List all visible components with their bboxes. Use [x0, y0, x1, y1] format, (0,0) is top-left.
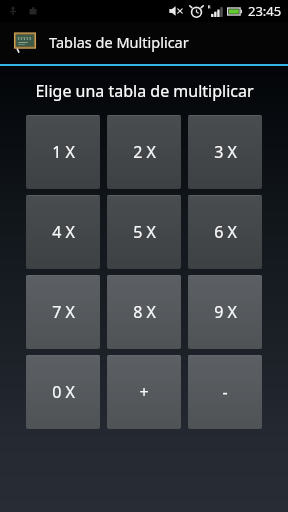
staticText: 4 X — [52, 221, 75, 243]
staticText: + — [139, 381, 149, 403]
staticText: Elige una tabla de multiplicar — [35, 80, 254, 102]
staticText: 1 X — [52, 141, 75, 163]
button[interactable]: 0 X — [26, 355, 100, 429]
button[interactable]: 9 X — [188, 275, 262, 349]
staticText: 0 X — [52, 381, 75, 403]
staticText: 23:45 — [248, 2, 282, 20]
staticText: 3 X — [214, 141, 237, 163]
button[interactable]: 7 X — [26, 275, 100, 349]
staticText: Tablas de Multiplicar — [49, 32, 189, 52]
button[interactable]: 3 X — [188, 115, 262, 189]
button[interactable]: 8 X — [107, 275, 181, 349]
staticText: 6 X — [214, 221, 237, 243]
button[interactable]: - — [188, 355, 262, 429]
staticText: 2 X — [133, 141, 156, 163]
staticText: 8 X — [133, 301, 156, 323]
button[interactable]: + — [107, 355, 181, 429]
staticText: - — [222, 381, 228, 403]
staticText: 9 X — [214, 301, 237, 323]
button[interactable]: 2 X — [107, 115, 181, 189]
staticText: 5 X — [133, 221, 156, 243]
button[interactable]: 1 X — [26, 115, 100, 189]
button[interactable]: 4 X — [26, 195, 100, 269]
staticText: 7 X — [52, 301, 75, 323]
button[interactable]: 6 X — [188, 195, 262, 269]
button[interactable]: 5 X — [107, 195, 181, 269]
